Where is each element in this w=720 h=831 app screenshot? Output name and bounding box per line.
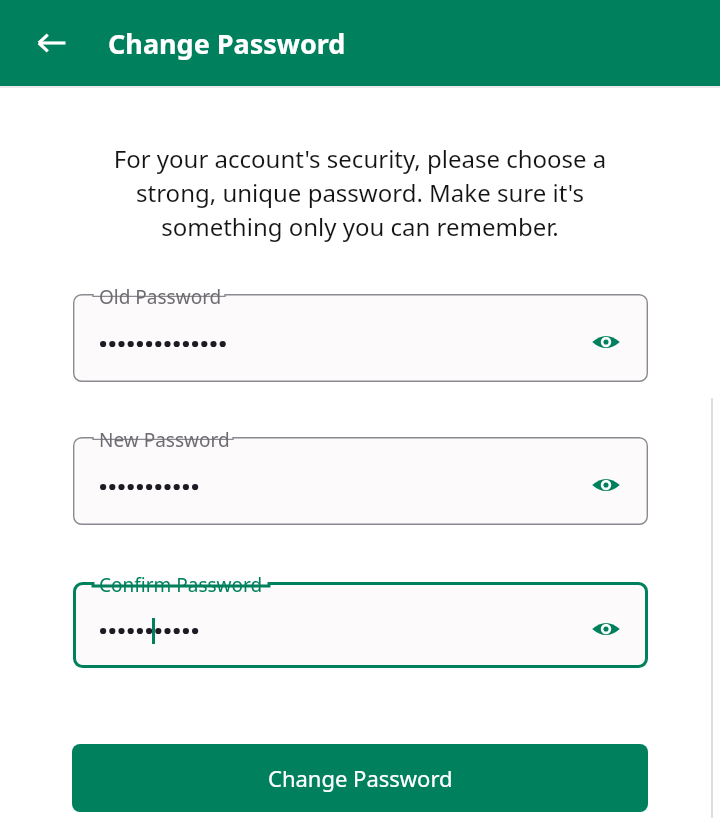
button[interactable]: Toggle password visibility — [586, 609, 626, 649]
button[interactable]: Back — [28, 19, 76, 67]
button[interactable]: Confirm Password — [73, 582, 648, 668]
button[interactable]: Change Password — [72, 744, 648, 812]
button[interactable]: Toggle password visibility — [586, 465, 626, 505]
staticText: Old Password — [99, 284, 222, 310]
button[interactable]: Old Password — [73, 294, 648, 382]
staticText: For your account's security, please choo… — [94, 142, 626, 243]
staticText: Change Password — [108, 25, 346, 62]
button[interactable]: Toggle password visibility — [586, 322, 626, 362]
button[interactable]: New Password — [73, 437, 648, 525]
staticText: New Password — [99, 427, 230, 453]
staticText: Confirm Password — [99, 572, 263, 598]
staticText: Change Password — [268, 763, 453, 793]
